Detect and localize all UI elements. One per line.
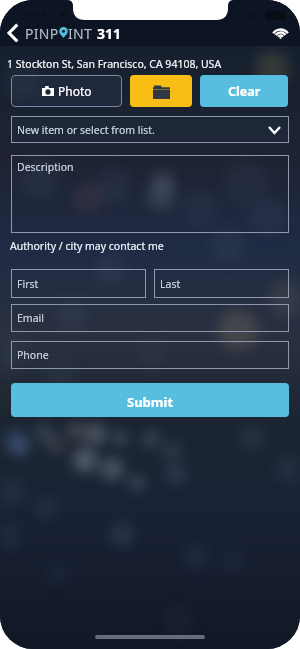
button[interactable]: Choose photo from library xyxy=(130,75,192,107)
staticText: Description xyxy=(17,160,74,174)
button[interactable]: Phone xyxy=(11,341,289,369)
staticText: INT xyxy=(68,24,97,43)
staticText: Last xyxy=(160,277,181,291)
other: Wi-Fi connected xyxy=(270,23,290,43)
staticText: Phone xyxy=(17,348,49,362)
staticText: Email xyxy=(17,311,44,325)
button[interactable]: Photo xyxy=(11,75,122,107)
staticText: Photo xyxy=(58,83,92,99)
staticText: 5:55 xyxy=(24,7,48,23)
staticText: Authority / city may contact me xyxy=(10,239,164,253)
button[interactable]: Clear xyxy=(200,75,288,107)
button[interactable]: Last xyxy=(154,269,289,298)
staticText: First xyxy=(17,277,39,291)
staticText: 311 xyxy=(97,24,122,43)
staticText: Submit xyxy=(127,393,174,411)
staticText: PINP xyxy=(25,24,59,43)
staticText: Clear xyxy=(228,83,261,100)
staticText: New item or select from list. xyxy=(17,123,155,137)
button[interactable]: New item or select from list. xyxy=(11,116,289,143)
staticText: 1 Stockton St, San Francisco, CA 94108, … xyxy=(7,57,222,70)
button[interactable]: Description xyxy=(11,155,289,233)
button[interactable]: Submit xyxy=(11,383,289,417)
button[interactable]: Email xyxy=(11,304,289,332)
button[interactable]: Back xyxy=(0,22,25,44)
button[interactable]: First xyxy=(11,269,146,298)
